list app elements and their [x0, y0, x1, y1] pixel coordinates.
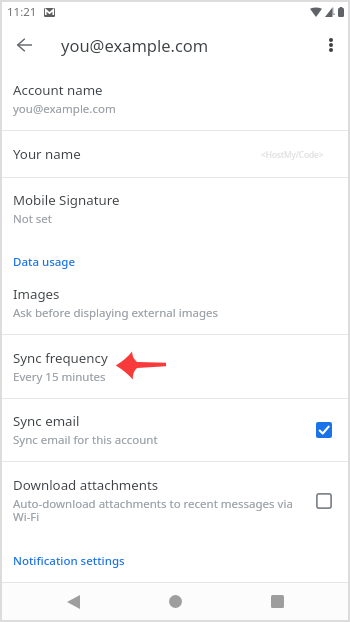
button[interactable]: Back: [22, 583, 124, 620]
staticText: Data usage: [13, 254, 76, 270]
staticText: Mobile Signature: [13, 191, 120, 209]
button[interactable]: Images: [2, 272, 348, 334]
staticText: Ask before displaying external images: [13, 305, 218, 321]
staticText: Every 15 minutes: [13, 369, 106, 385]
button[interactable]: Data usage: [2, 240, 348, 272]
button[interactable]: Recent apps: [226, 583, 328, 620]
staticText: Sync email: [13, 412, 80, 430]
staticText: Images: [13, 285, 60, 303]
button[interactable]: Download attachments: [2, 462, 348, 539]
staticText: Notification settings: [13, 553, 125, 569]
button[interactable]: Sync frequency: [2, 335, 348, 398]
button[interactable]: Home: [124, 583, 226, 620]
button[interactable]: Your name: [2, 131, 348, 177]
button[interactable]: More options: [315, 22, 347, 68]
staticText: Download attachments: [13, 476, 159, 494]
staticText: Sync frequency: [13, 349, 108, 367]
staticText: Account name: [13, 81, 103, 99]
staticText: Not set: [13, 211, 52, 227]
button[interactable]: Account name: [2, 68, 348, 130]
staticText: Sync email for this account: [13, 432, 158, 448]
staticText: 11:21: [7, 4, 37, 20]
button[interactable]: Notification settings: [2, 539, 348, 579]
button[interactable]: Sync email: [2, 399, 348, 461]
staticText: Auto-download attachments to recent mess…: [13, 496, 308, 525]
button[interactable]: Mobile Signature: [2, 178, 348, 240]
staticText: Your name: [13, 145, 81, 163]
button[interactable]: Navigate up: [2, 23, 46, 67]
staticText: you@example.com: [13, 101, 116, 117]
staticText: <HostMy/Code>: [261, 149, 324, 160]
staticText: you@example.com: [61, 34, 209, 56]
